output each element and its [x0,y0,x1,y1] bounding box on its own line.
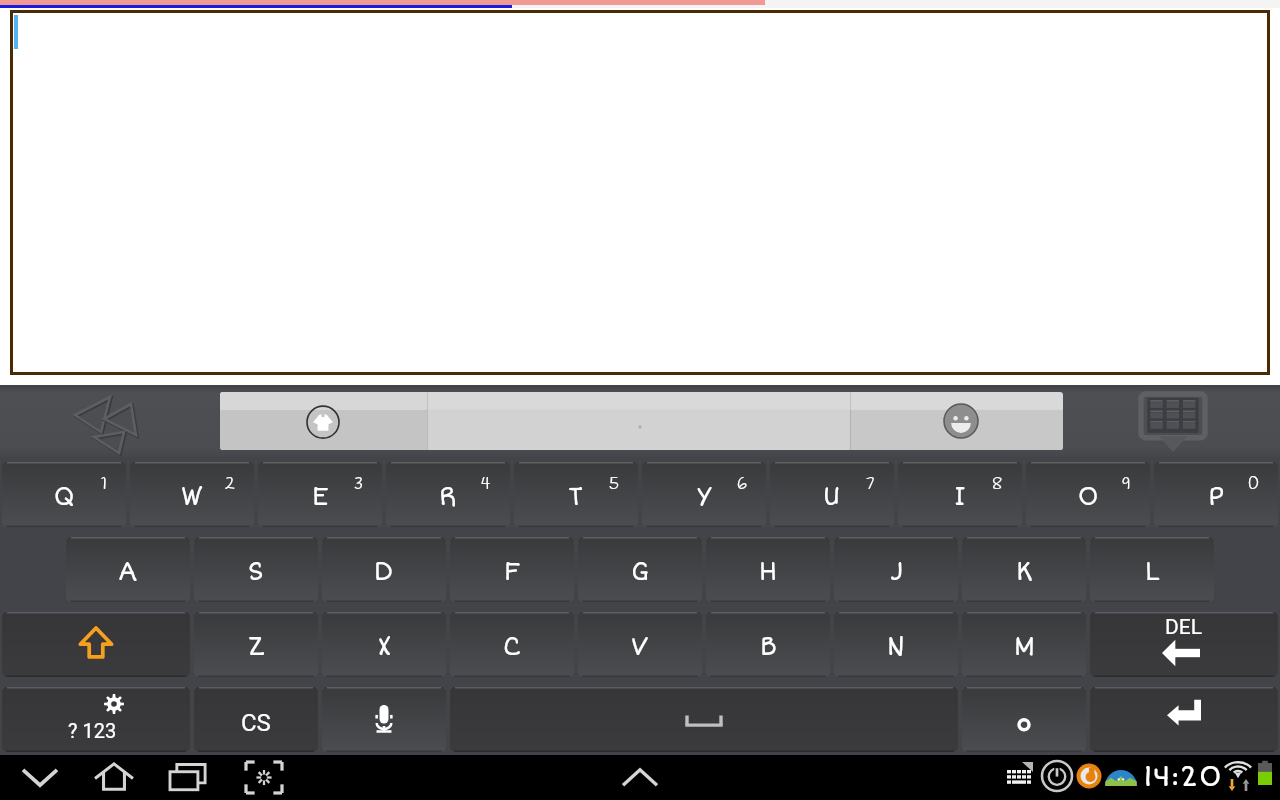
staticText: T [568,482,584,513]
staticText: Z [248,632,265,663]
button[interactable]: A [66,537,190,602]
staticText: 14:20 [1143,758,1222,795]
staticText: 1 [101,473,107,496]
button[interactable]: Expand [608,755,672,800]
button[interactable]: W [130,462,254,527]
staticText: K [1016,557,1033,588]
staticText: R [439,482,457,513]
staticText: E [312,482,329,513]
staticText: J [890,557,903,588]
button[interactable]: J [834,537,958,602]
button[interactable]: Period [962,687,1086,752]
staticText: S [248,557,264,588]
button[interactable]: T [514,462,638,527]
button[interactable]: Home [82,755,146,800]
staticText: 2 [225,473,235,496]
staticText: A [118,557,138,588]
button[interactable]: R [386,462,510,527]
staticText: G [631,557,649,588]
button[interactable]: C [450,612,574,677]
button[interactable]: E [258,462,382,527]
staticText: H [759,557,777,588]
staticText: 8 [992,473,1003,496]
button[interactable]: Screenshot [232,755,296,800]
staticText: M [1014,632,1035,663]
button[interactable]: Hide keyboard [1125,385,1221,457]
staticText: U [823,482,841,513]
staticText: W [181,482,203,513]
staticText: 7 [866,473,875,496]
button[interactable]: H [706,537,830,602]
staticText: L [1145,557,1160,588]
button[interactable]: Voice input [322,687,446,752]
button[interactable]: P [1154,462,1278,527]
button[interactable]: CS [194,687,318,752]
button[interactable]: K [962,537,1086,602]
staticText: DEL [1165,615,1203,640]
button[interactable]: Z [194,612,318,677]
staticText: I [954,482,966,513]
staticText: O [1078,482,1099,513]
button[interactable]: O [1026,462,1150,527]
button[interactable]: F [450,537,574,602]
staticText: 5 [609,473,619,496]
staticText: B [760,632,777,663]
button[interactable]: Q [2,462,126,527]
staticText: V [631,632,649,663]
button[interactable]: Space [450,687,958,752]
staticText: ? 123 [68,719,117,742]
button[interactable]: G [578,537,702,602]
staticText: F [504,557,520,588]
staticText: D [374,557,394,588]
staticText: 3 [354,473,363,496]
button[interactable]: I [898,462,1022,527]
button[interactable]: Back [8,755,72,800]
button[interactable]: U [770,462,894,527]
button[interactable]: M [962,612,1086,677]
button[interactable]: Symbols [2,687,190,752]
button[interactable]: S [194,537,318,602]
button[interactable]: Y [642,462,766,527]
button[interactable]: Input method [62,385,158,457]
button[interactable]: Enter [1090,687,1278,752]
button[interactable]: B [706,612,830,677]
staticText: 4 [481,473,491,496]
button[interactable]: Recents [156,755,220,800]
staticText: 6 [737,473,747,496]
button[interactable]: X [322,612,446,677]
button[interactable]: Shift [2,612,190,677]
staticText: P [1208,482,1225,513]
staticText: X [378,632,391,663]
button[interactable]: N [834,612,958,677]
staticText: Q [54,482,75,513]
button[interactable]: V [578,612,702,677]
button[interactable]: Delete [1090,612,1278,677]
button[interactable] [220,392,1063,450]
staticText: 0 [1248,473,1259,496]
staticText: Y [697,482,712,513]
button[interactable]: L [1090,537,1214,602]
staticText: 9 [1122,473,1131,496]
button[interactable]: D [322,537,446,602]
staticText: N [887,632,905,663]
staticText: C [503,632,521,663]
staticText: CS [241,709,271,737]
